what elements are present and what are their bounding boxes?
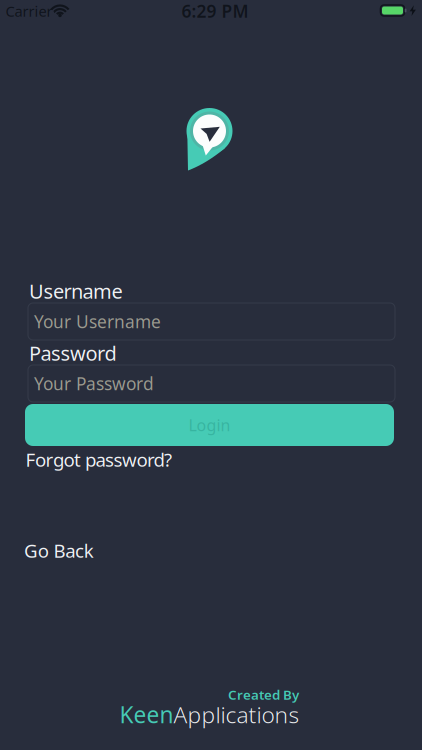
staticText: Forgot password? xyxy=(25,447,172,472)
staticText: 6:29 PM xyxy=(181,0,248,22)
button[interactable]: Forgot password? xyxy=(25,447,225,472)
button[interactable]: Go Back xyxy=(24,538,134,563)
staticText: Carrier xyxy=(5,1,52,21)
staticText: Go Back xyxy=(24,538,94,563)
button[interactable]: Login xyxy=(25,404,394,446)
staticText: Created By xyxy=(228,686,299,703)
staticText: Your Password xyxy=(34,372,154,395)
staticText: Keen xyxy=(119,699,173,729)
textField[interactable]: Your Username xyxy=(34,310,389,333)
staticText: Login xyxy=(188,414,230,436)
staticText: Your Username xyxy=(34,310,161,333)
staticText: Applications xyxy=(173,699,299,729)
secureTextField[interactable]: Your Password xyxy=(34,372,389,395)
staticText: Username xyxy=(29,278,122,304)
staticText: Password xyxy=(29,340,116,366)
